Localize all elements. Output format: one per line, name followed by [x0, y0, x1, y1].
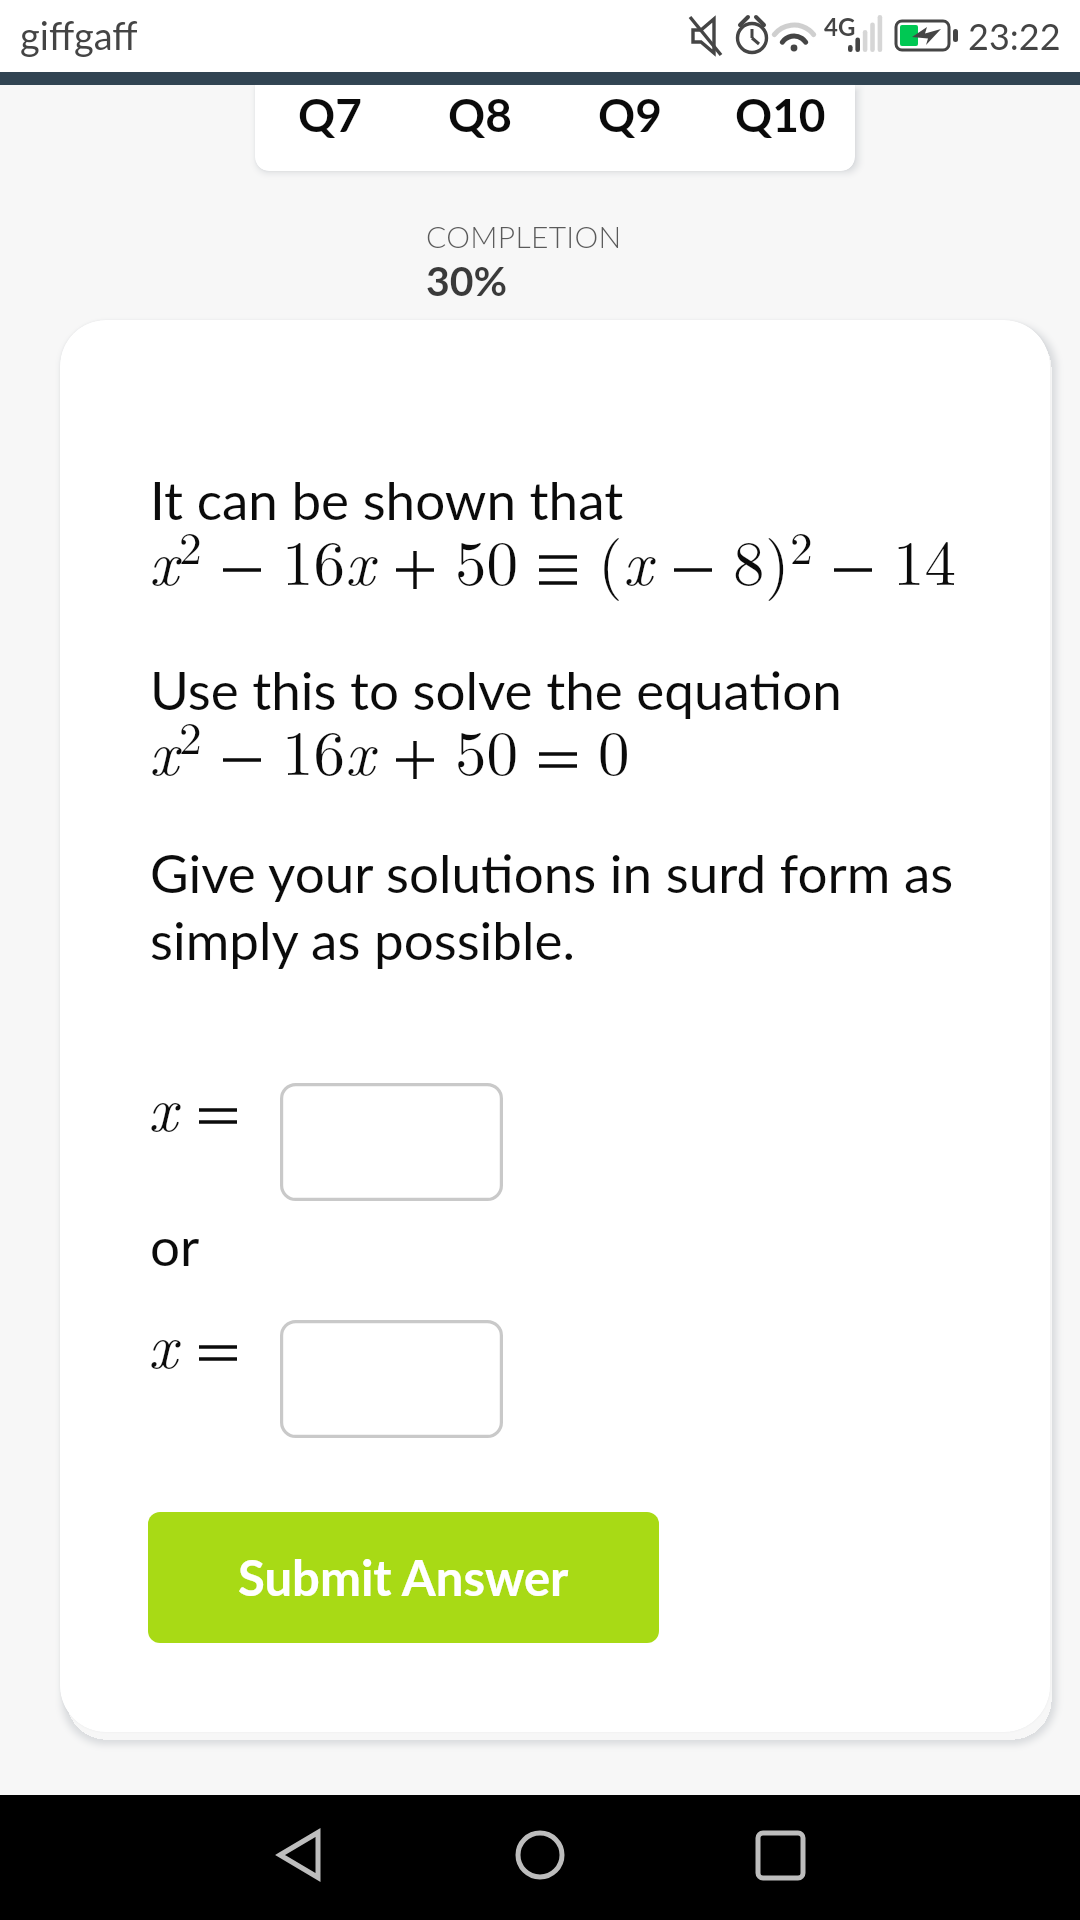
button[interactable]: Answer input	[280, 1083, 503, 1201]
staticText: Use this to solve the equation	[150, 658, 842, 722]
staticText: 50	[455, 704, 518, 793]
staticText: Give your solutions in surd form as simp…	[150, 841, 954, 971]
button[interactable]: Q8	[405, 85, 555, 171]
staticText: 4G	[824, 12, 856, 41]
staticText: It can be shown that	[150, 468, 624, 532]
staticText: x	[623, 514, 653, 603]
staticText: 2	[179, 513, 202, 577]
staticText: 14	[893, 514, 956, 603]
staticText: 23:22	[968, 14, 1061, 57]
staticText: 30%	[426, 256, 508, 305]
staticText: 8	[733, 514, 765, 603]
staticText: 16	[282, 704, 345, 793]
button[interactable]: Answer input	[280, 1320, 503, 1438]
staticText: x	[345, 514, 375, 603]
staticText: )	[765, 514, 790, 603]
button[interactable]: Recent apps	[720, 1795, 840, 1915]
staticText: giffgaff	[20, 12, 138, 58]
staticText: x	[345, 704, 375, 793]
staticText: x	[148, 1060, 178, 1149]
staticText: COMPLETION	[426, 218, 622, 254]
staticText: 2	[179, 703, 202, 767]
button[interactable]: Q7	[255, 85, 405, 171]
staticText: x	[149, 514, 179, 603]
staticText: 16	[282, 514, 345, 603]
staticText: x	[149, 704, 179, 793]
staticText: 50	[455, 514, 518, 603]
staticText: Q8	[448, 87, 512, 142]
staticText: Q9	[598, 87, 662, 142]
staticText: 0	[598, 704, 630, 793]
staticText: (	[598, 514, 623, 603]
button[interactable]: Back	[240, 1795, 360, 1915]
staticText: 2	[790, 513, 813, 577]
button[interactable]: Q9	[555, 85, 705, 171]
staticText: x	[148, 1297, 178, 1386]
button[interactable]: Q10	[705, 85, 855, 171]
button[interactable]: Submit Answer	[148, 1512, 659, 1643]
staticText: Q10	[735, 87, 826, 142]
staticText: Q7	[298, 87, 362, 142]
button[interactable]: Home	[480, 1795, 600, 1915]
staticText: or	[150, 1214, 200, 1278]
staticText: Submit Answer	[238, 1548, 569, 1607]
